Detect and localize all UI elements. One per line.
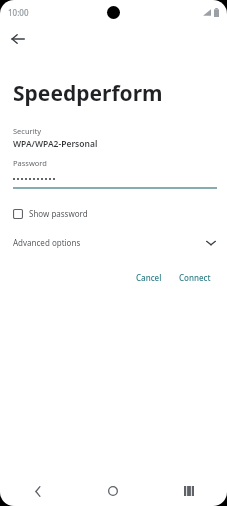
button[interactable]: Home bbox=[75, 476, 151, 506]
button[interactable]: Cancel bbox=[130, 268, 168, 287]
staticText: Security bbox=[13, 126, 42, 136]
staticText: Advanced options bbox=[13, 237, 206, 248]
staticText: Cancel bbox=[136, 272, 162, 283]
staticText: Show password bbox=[29, 208, 88, 219]
button[interactable]: Back bbox=[0, 476, 75, 506]
button[interactable]: Password bbox=[0, 158, 227, 189]
button[interactable]: Show password bbox=[13, 208, 88, 219]
button[interactable]: Navigate up bbox=[5, 26, 31, 52]
staticText: Password bbox=[13, 158, 47, 168]
button[interactable]: Advanced options bbox=[0, 237, 227, 248]
button[interactable]: Connect bbox=[173, 268, 217, 287]
staticText: Connect bbox=[179, 272, 211, 283]
staticText: 10:00 bbox=[8, 7, 29, 18]
staticText: Speedperform bbox=[13, 79, 163, 108]
button[interactable]: Recent apps bbox=[151, 476, 227, 506]
staticText: WPA/WPA2-Personal bbox=[13, 138, 98, 150]
